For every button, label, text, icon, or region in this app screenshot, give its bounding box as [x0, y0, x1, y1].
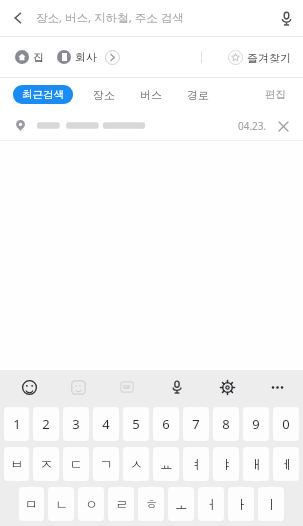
button[interactable]: 5	[123, 407, 149, 441]
button[interactable]: 3	[63, 407, 89, 441]
button[interactable]: Stickers	[65, 374, 91, 400]
button[interactable]: ㅎ	[138, 487, 164, 521]
staticText: ㅅ	[130, 456, 143, 472]
button[interactable]: ㅅ	[123, 447, 149, 481]
staticText: ㅓ	[205, 496, 218, 512]
staticText: 경로	[187, 88, 209, 102]
button[interactable]: 편집	[261, 84, 290, 105]
staticText: 4	[102, 415, 110, 433]
button[interactable]: More shortcuts	[105, 50, 120, 65]
button[interactable]: 7	[183, 407, 209, 441]
staticText: 편집	[265, 88, 286, 101]
staticText: 2	[42, 415, 50, 433]
button[interactable]: 경로	[181, 84, 215, 106]
button[interactable]: ㅏ	[228, 487, 254, 521]
button[interactable]: Delete	[275, 118, 291, 134]
staticText: ㄹ	[115, 496, 128, 512]
button[interactable]: 장소	[87, 84, 121, 106]
button[interactable]: ㅑ	[213, 447, 239, 481]
staticText: 5	[132, 415, 140, 433]
staticText: ㅁ	[25, 496, 38, 512]
button[interactable]: ㄷ	[63, 447, 89, 481]
staticText: 최근검색	[22, 88, 64, 101]
staticText: 3	[72, 415, 80, 433]
button[interactable]: ㅇ	[78, 487, 104, 521]
staticText: ㄷ	[70, 456, 83, 472]
button[interactable]: ㄴ	[48, 487, 74, 521]
staticText: 7	[192, 415, 200, 433]
staticText: 8	[222, 415, 230, 433]
button[interactable]: Back	[0, 0, 36, 36]
button[interactable]: ㅂ	[4, 447, 29, 481]
staticText: GIF	[123, 384, 131, 390]
button[interactable]: 집	[15, 50, 44, 64]
staticText: 장소	[93, 88, 115, 102]
button[interactable]: 회사	[57, 50, 97, 64]
button[interactable]: ㅐ	[243, 447, 269, 481]
button[interactable]: Voice input	[164, 374, 190, 400]
button[interactable]: GIF	[114, 374, 140, 400]
staticText: 집	[33, 50, 44, 64]
button[interactable]: ㅛ	[153, 447, 179, 481]
button[interactable]: 8	[213, 407, 239, 441]
staticText: 6	[162, 415, 170, 433]
button[interactable]: ㄱ	[93, 447, 119, 481]
button[interactable]: ㄹ	[108, 487, 134, 521]
button[interactable]: ㅓ	[198, 487, 224, 521]
button[interactable]: Emoji	[16, 374, 42, 400]
button[interactable]: ㅣ	[258, 487, 284, 521]
button[interactable]: 버스	[134, 84, 168, 106]
button[interactable]: Keyboard settings	[214, 374, 240, 400]
staticText: ㅔ	[280, 456, 293, 472]
button[interactable]: More options	[264, 374, 290, 400]
staticText: 장소, 버스, 지하철, 주소 검색	[36, 10, 269, 26]
button[interactable]: ㅈ	[33, 447, 59, 481]
staticText: ㅇ	[85, 496, 98, 512]
button[interactable]: 4	[93, 407, 119, 441]
staticText: ㅕ	[190, 456, 203, 472]
staticText: ㄴ	[55, 496, 68, 512]
staticText: 버스	[140, 88, 162, 102]
staticText: 회사	[75, 50, 97, 64]
staticText: 04.23.	[238, 119, 267, 133]
staticText: ㅎ	[145, 496, 158, 512]
staticText: ㅑ	[220, 456, 233, 472]
staticText: ㅂ	[10, 456, 23, 472]
staticText: ㅣ	[265, 496, 278, 512]
staticText: 즐겨찾기	[247, 51, 291, 65]
button[interactable]: 즐겨찾기	[228, 50, 291, 65]
button[interactable]: 0	[273, 407, 299, 441]
button[interactable]: 04.23.	[0, 111, 303, 140]
button[interactable]: 최근검색	[13, 85, 73, 104]
staticText: ㅛ	[160, 456, 173, 472]
button[interactable]: 6	[153, 407, 179, 441]
button[interactable]: ㅗ	[168, 487, 194, 521]
button[interactable]: 2	[33, 407, 59, 441]
staticText: ㅈ	[40, 456, 53, 472]
staticText: ㄱ	[100, 456, 113, 472]
staticText: ㅐ	[250, 456, 263, 472]
staticText: 9	[252, 415, 260, 433]
staticText: 1	[13, 415, 21, 433]
button[interactable]: ㅔ	[273, 447, 299, 481]
staticText: ㅗ	[175, 496, 188, 512]
button[interactable]: ㅕ	[183, 447, 209, 481]
staticText: 0	[282, 415, 290, 433]
button[interactable]: ㅁ	[19, 487, 44, 521]
button[interactable]: 1	[4, 407, 29, 441]
button[interactable]: 9	[243, 407, 269, 441]
staticText: ㅏ	[235, 496, 248, 512]
button[interactable]: Voice search	[269, 0, 303, 36]
